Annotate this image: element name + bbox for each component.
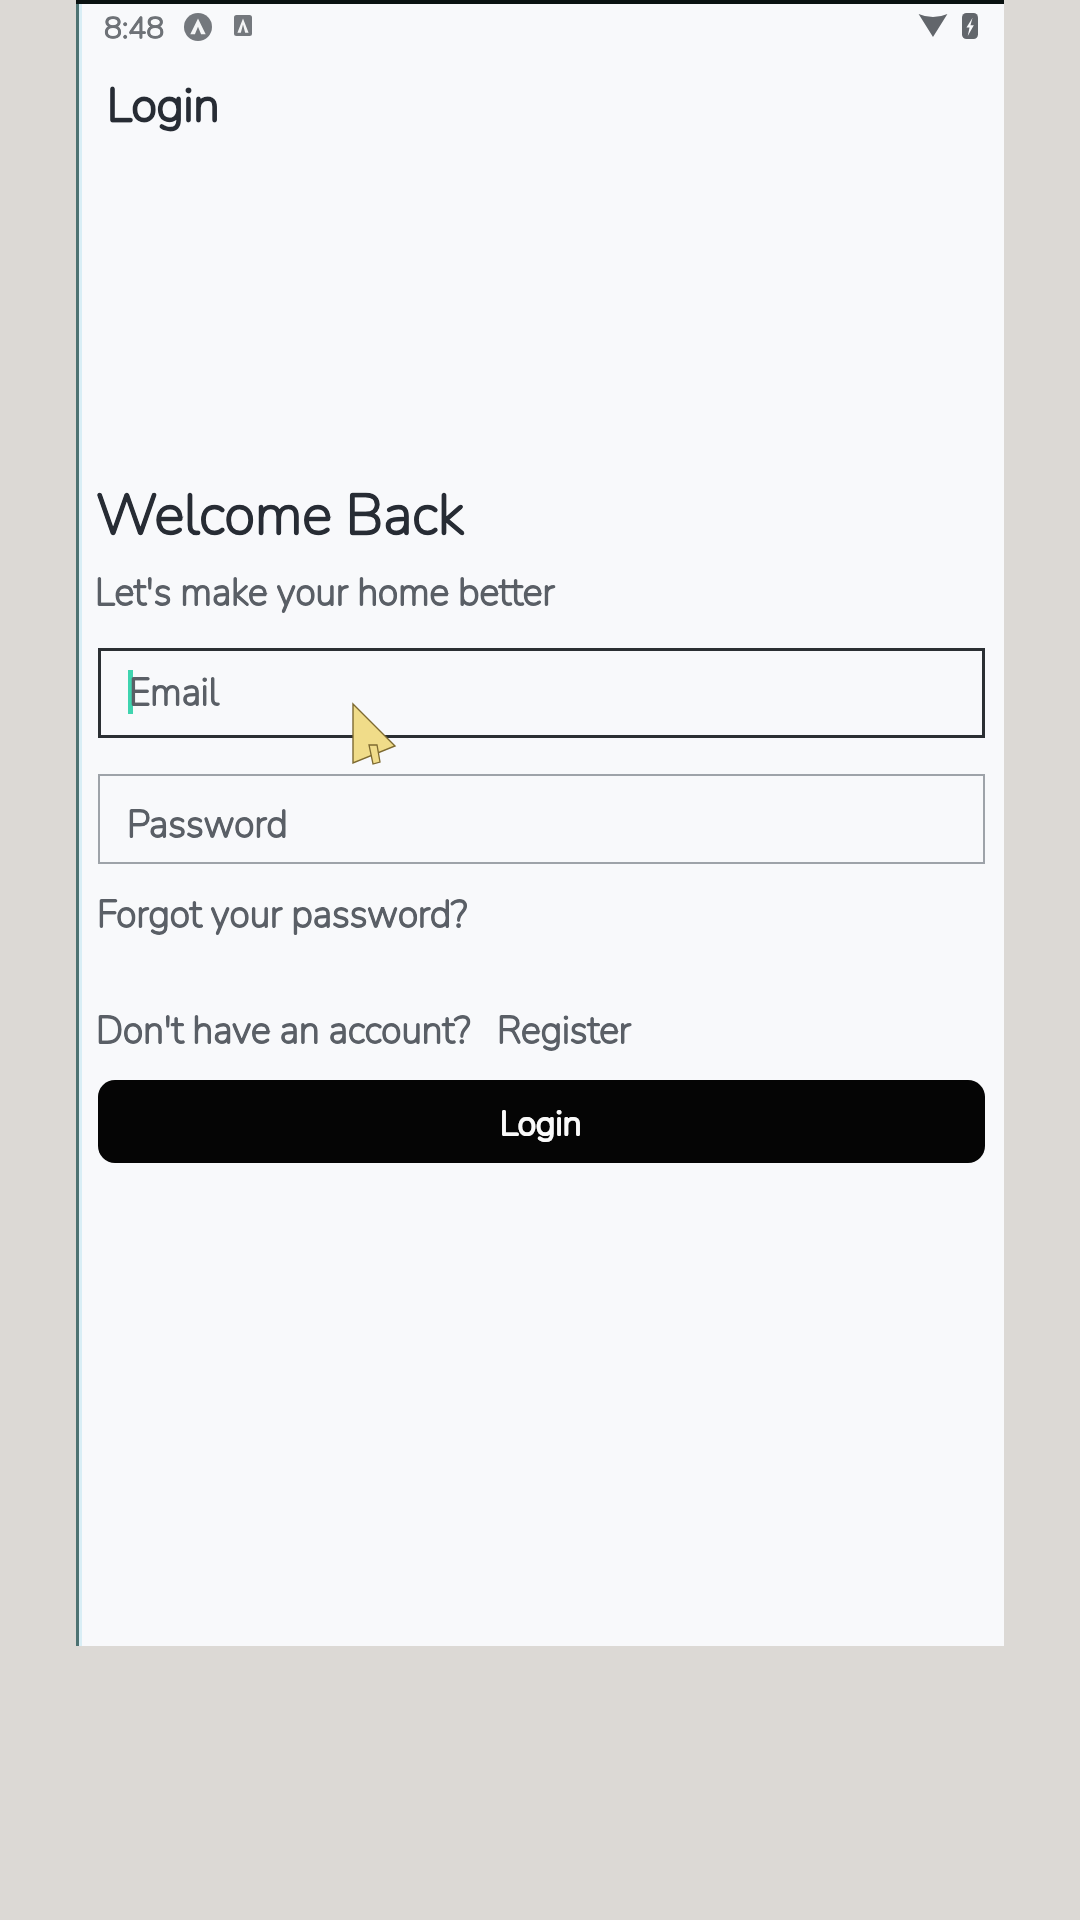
staticText: Forgot your password? <box>97 889 468 940</box>
other: Notification <box>184 13 212 41</box>
staticText: Don't have an account? <box>96 1005 471 1056</box>
button[interactable]: Forgot your password? <box>97 889 468 940</box>
staticText: Password <box>127 799 288 850</box>
button[interactable]: Email <box>98 648 985 738</box>
staticText: Welcome Back <box>96 477 465 554</box>
button[interactable]: Register <box>497 1005 632 1056</box>
staticText: Login <box>107 73 220 137</box>
staticText: Don't have an account? <box>96 1005 471 1056</box>
button[interactable]: Password <box>98 774 985 864</box>
staticText: 8:48 <box>104 8 165 49</box>
button[interactable]: Login <box>98 1080 985 1163</box>
staticText: Password <box>127 799 288 850</box>
staticText: Login <box>500 1101 582 1147</box>
staticText: Login <box>107 73 220 137</box>
staticText: Email <box>129 667 220 718</box>
staticText: Let's make your home better <box>95 567 555 618</box>
staticText: 8:48 <box>104 8 165 49</box>
other: Notification <box>234 15 252 36</box>
other: Wifi <box>918 13 948 37</box>
other: Battery <box>962 13 978 39</box>
staticText: Login <box>500 1101 582 1147</box>
staticText: Email <box>129 667 220 718</box>
staticText: Forgot your password? <box>97 889 468 940</box>
staticText: Let's make your home better <box>95 567 555 618</box>
staticText: Register <box>497 1005 632 1056</box>
staticText: Welcome Back <box>96 477 465 554</box>
staticText: Register <box>497 1005 632 1056</box>
